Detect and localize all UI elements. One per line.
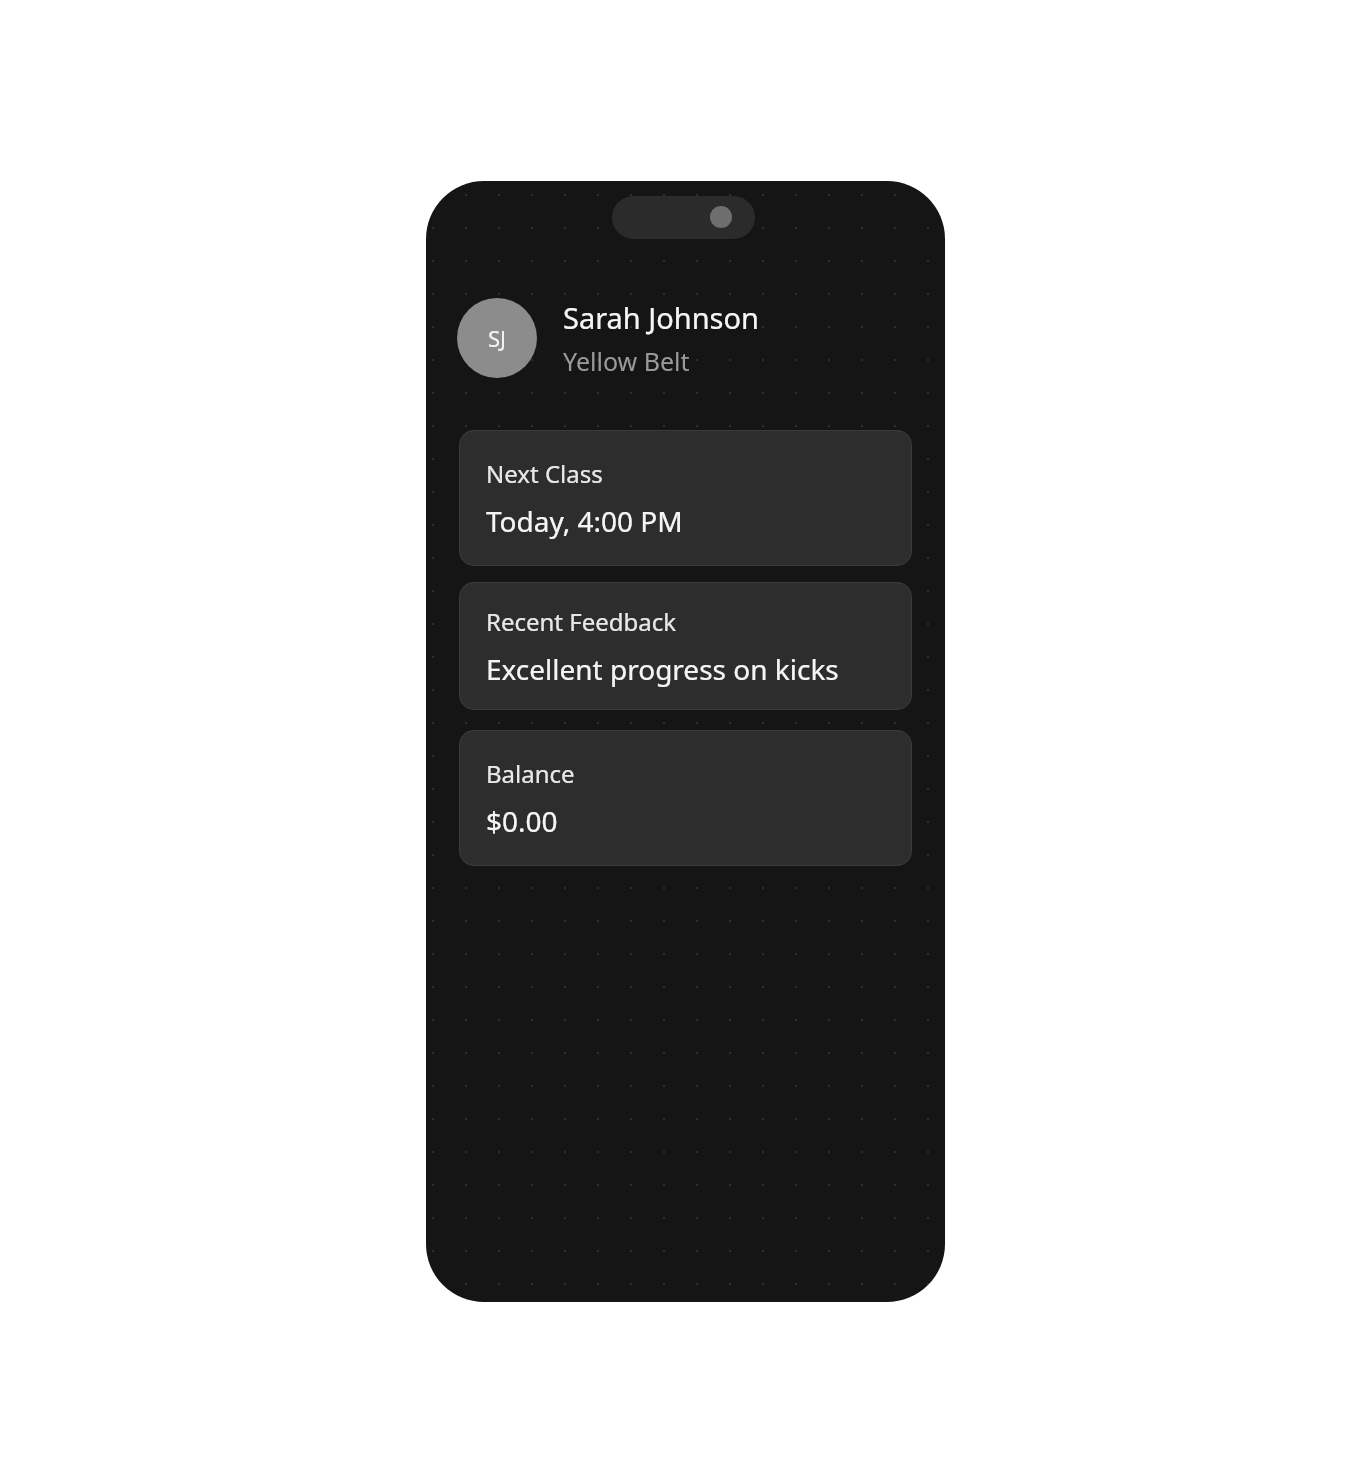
staticText: Sarah Johnson (563, 298, 759, 337)
staticText: SJ (488, 323, 507, 353)
button[interactable]: Balance (459, 730, 912, 866)
staticText: Next Class (486, 457, 603, 490)
staticText: Yellow Belt (563, 344, 690, 378)
staticText: Recent Feedback (486, 605, 677, 638)
staticText: $0.00 (486, 802, 558, 840)
button[interactable]: Next Class (459, 430, 912, 566)
staticText: Today, 4:00 PM (486, 502, 683, 540)
button[interactable]: SJ (457, 298, 914, 378)
button[interactable]: Recent Feedback (459, 582, 912, 710)
staticText: Excellent progress on kicks (486, 650, 839, 688)
staticText: Balance (486, 757, 575, 790)
